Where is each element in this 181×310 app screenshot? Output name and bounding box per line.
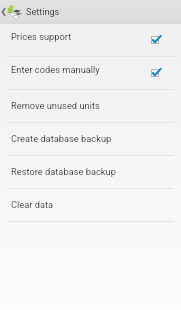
staticText: Enter codes manually xyxy=(11,64,100,75)
staticText: Remove unused units xyxy=(11,100,100,111)
button[interactable]: Navigate up xyxy=(0,0,181,24)
staticText: Restore database backup xyxy=(11,166,116,177)
staticText: Prices support xyxy=(11,31,72,42)
button[interactable]: Remove unused units xyxy=(0,90,181,123)
button[interactable]: Clear data xyxy=(0,189,181,222)
button[interactable]: Prices support xyxy=(0,24,181,57)
staticText: Settings xyxy=(26,7,60,18)
staticText: Create database backup xyxy=(11,133,112,144)
staticText: Clear data xyxy=(11,199,54,210)
button[interactable]: Create database backup xyxy=(0,123,181,156)
button[interactable]: Enter codes manually xyxy=(0,57,181,90)
button[interactable]: Restore database backup xyxy=(0,156,181,189)
